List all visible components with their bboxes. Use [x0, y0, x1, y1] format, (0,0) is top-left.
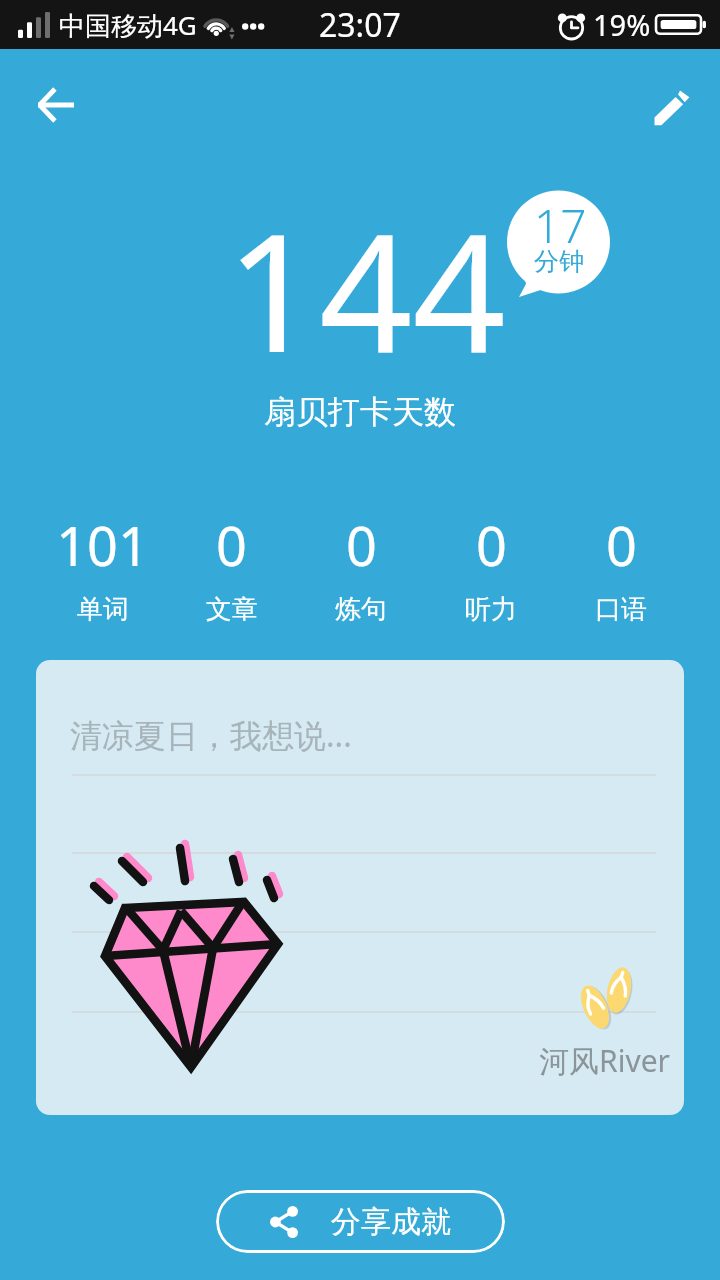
staticText: 口语: [595, 593, 647, 626]
staticText: 分钟: [534, 246, 584, 277]
button[interactable]: Back: [20, 69, 92, 141]
staticText: 17: [534, 194, 587, 257]
staticText: 分享成就: [331, 1203, 451, 1241]
button[interactable]: 0: [556, 508, 686, 626]
staticText: 中国移动4G: [59, 7, 197, 43]
staticText: 23:07: [319, 3, 401, 47]
button[interactable]: Edit: [636, 72, 708, 144]
staticText: 听力: [465, 593, 517, 626]
staticText: 19%: [593, 5, 651, 44]
staticText: 0: [216, 508, 247, 582]
staticText: 0: [346, 508, 377, 582]
button[interactable]: 0: [167, 508, 296, 626]
button[interactable]: 分享成就: [216, 1190, 505, 1253]
staticText: 河风River: [539, 1040, 670, 1081]
staticText: 清凉夏日，我想说...: [70, 713, 352, 757]
button[interactable]: 101: [38, 508, 167, 626]
button[interactable]: 清凉夏日，我想说...: [36, 660, 684, 1115]
staticText: 0: [606, 508, 637, 582]
staticText: 扇贝打卡天数: [264, 392, 456, 432]
staticText: 101: [56, 508, 149, 582]
staticText: 0: [476, 508, 507, 582]
button[interactable]: 0: [296, 508, 426, 626]
button[interactable]: 0: [426, 508, 556, 626]
staticText: 文章: [206, 593, 258, 626]
staticText: 144: [226, 178, 506, 400]
staticText: 单词: [77, 593, 129, 626]
staticText: 炼句: [335, 593, 387, 626]
